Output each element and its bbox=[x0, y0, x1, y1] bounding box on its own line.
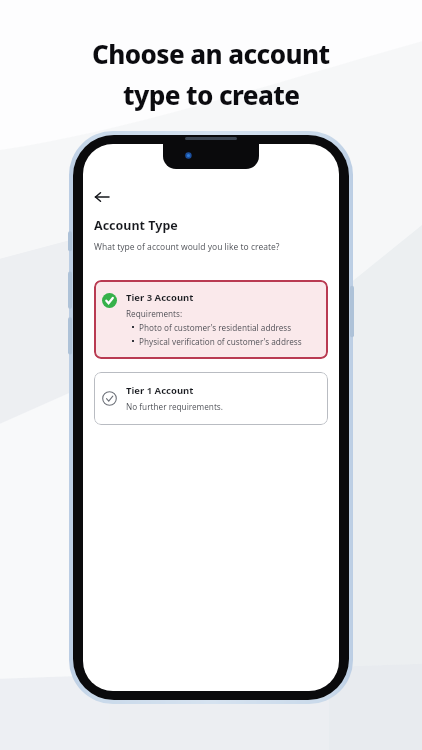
staticText: What type of account would you like to c… bbox=[94, 241, 280, 253]
staticText: Tier 1 Account bbox=[126, 384, 194, 397]
staticText: Physical verification of customer's addr… bbox=[139, 336, 302, 347]
staticText: Account Type bbox=[94, 217, 178, 234]
staticText: Choose an account bbox=[92, 36, 330, 71]
button[interactable]: Tier 1 Account bbox=[94, 372, 328, 425]
staticText: Tier 3 Account bbox=[126, 291, 194, 304]
staticText: Photo of customer's residential address bbox=[139, 322, 292, 333]
button[interactable]: Tier 3 Account bbox=[94, 280, 328, 359]
staticText: No further requirements. bbox=[126, 401, 223, 412]
staticText: type to create bbox=[123, 77, 300, 112]
staticText: Requirements: bbox=[126, 308, 183, 319]
button[interactable]: Back bbox=[94, 186, 116, 208]
